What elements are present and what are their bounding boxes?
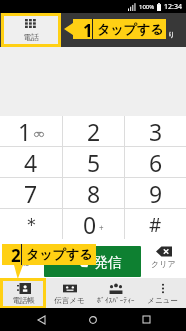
staticText: 5 [87, 147, 101, 178]
staticText: クリア [151, 259, 176, 269]
staticText: タップする [26, 246, 93, 262]
button[interactable]: 7 [0, 178, 62, 209]
staticText: 発信 [94, 254, 122, 272]
button[interactable]: 8 [63, 178, 124, 209]
staticText: 1 [18, 116, 32, 147]
button[interactable]: 伝言メモ [46, 278, 92, 308]
button[interactable]: SMS [0, 239, 44, 278]
staticText: 0 [83, 209, 97, 240]
button[interactable]: Back [29, 308, 53, 331]
button[interactable]: 9 [125, 178, 186, 209]
staticText: 3 [149, 116, 163, 147]
button[interactable]: 電話帳 [0, 278, 46, 308]
button[interactable]: Home [81, 308, 105, 331]
button[interactable]: ﾎﾞｲｽﾊﾟｰﾃｨｰ [92, 278, 139, 308]
staticText: SMS [15, 259, 30, 269]
button[interactable]: 1 [0, 116, 62, 147]
button[interactable]: 電話 [4, 16, 58, 44]
staticText: 100% [139, 3, 155, 11]
staticText: 2 [11, 244, 21, 265]
button[interactable]: # [125, 209, 186, 240]
staticText: メニュー [147, 296, 178, 305]
staticText: 4 [24, 147, 38, 178]
staticText: 電話 [23, 32, 39, 42]
staticText: 2 [87, 116, 101, 147]
staticText: り [168, 30, 176, 39]
button[interactable]: メニュー [139, 278, 186, 308]
staticText: 6 [149, 147, 163, 178]
button[interactable]: クリア [141, 239, 186, 278]
button[interactable]: 5 [63, 147, 124, 178]
button[interactable]: ＊ [0, 209, 62, 240]
button[interactable]: 4 [0, 147, 62, 178]
staticText: # [149, 212, 162, 238]
staticText: 1 [83, 19, 93, 39]
staticText: 7 [24, 178, 38, 209]
button[interactable]: 発信 [44, 246, 141, 277]
staticText: タップする [97, 21, 164, 37]
staticText: 12:34 [164, 2, 182, 12]
staticText: ＊ [22, 213, 41, 237]
button[interactable]: 3 [125, 116, 186, 147]
button[interactable]: 2 [63, 116, 124, 147]
button[interactable]: Recents [134, 308, 158, 331]
staticText: ﾎﾞｲｽﾊﾟｰﾃｨｰ [97, 296, 135, 304]
staticText: 9 [149, 178, 163, 209]
button[interactable]: 6 [125, 147, 186, 178]
staticText: 伝言メモ [54, 296, 85, 305]
staticText: 電話帳 [12, 296, 35, 305]
staticText: + [99, 222, 104, 233]
staticText: 8 [87, 178, 101, 209]
button[interactable]: 0 [63, 209, 124, 240]
